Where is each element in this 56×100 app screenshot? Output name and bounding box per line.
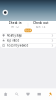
button[interactable]: Recently viewed [0,43,56,48]
staticText: Check out [33,21,48,25]
staticText: Sun 14 [36,25,46,29]
button[interactable]: Book [24,29,32,32]
button[interactable]: Trips [22,88,34,100]
button[interactable]: Search [11,88,22,100]
button[interactable]: Profile [2,10,8,15]
staticText: Top rated [7,39,20,42]
button[interactable]: Nearby stays [0,33,56,38]
staticText: Book [24,29,32,32]
staticText: Nearby stays [7,34,22,37]
button[interactable]: Inbox [34,88,45,100]
button[interactable]: Home [0,88,11,100]
staticText: Fri 12 [11,25,19,29]
staticText: Recently viewed [7,44,29,47]
button[interactable]: Profile [45,88,56,100]
button[interactable]: Top rated [0,38,56,43]
staticText: Check in [9,21,22,25]
